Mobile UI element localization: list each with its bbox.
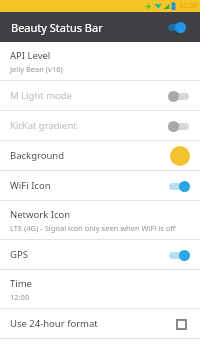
staticText: WiFi Icon <box>10 179 51 192</box>
staticText: 12:00 <box>10 292 30 302</box>
staticText: Use 24-hour format <box>10 317 98 330</box>
button[interactable]: Background colour <box>168 144 192 168</box>
staticText: KitKat gradient <box>10 119 77 132</box>
staticText: LTE (4G) - Signal icon only seen when Wi… <box>10 223 176 233</box>
button[interactable]: Use 24-hour format <box>170 313 192 335</box>
button[interactable]: Network Icon <box>0 201 200 239</box>
button[interactable]: Toggle status bar <box>165 17 189 37</box>
button[interactable]: WiFi Icon <box>0 171 200 200</box>
staticText: Time <box>10 277 32 290</box>
staticText: GPS <box>10 248 28 261</box>
staticText: Jelly Bean (v16) <box>10 64 63 74</box>
button[interactable]: KitKat gradient <box>0 111 200 140</box>
staticText: 12:00 <box>179 1 197 11</box>
staticText: Network Icon <box>10 208 71 221</box>
staticText: M Light mode <box>10 89 72 102</box>
button[interactable]: API Level <box>0 42 200 80</box>
staticText: Beauty Status Bar <box>11 20 165 35</box>
button[interactable]: Off <box>166 116 192 136</box>
button[interactable]: Off <box>166 86 192 106</box>
button[interactable]: On <box>166 245 192 265</box>
button[interactable]: On <box>166 176 192 196</box>
staticText: Background <box>10 149 65 162</box>
button[interactable]: Time <box>0 270 200 308</box>
staticText: API Level <box>10 49 51 62</box>
button[interactable]: GPS <box>0 240 200 269</box>
button[interactable]: M Light mode <box>0 81 200 110</box>
button[interactable]: Use 24-hour format <box>0 309 200 338</box>
button[interactable]: Background <box>0 141 200 170</box>
